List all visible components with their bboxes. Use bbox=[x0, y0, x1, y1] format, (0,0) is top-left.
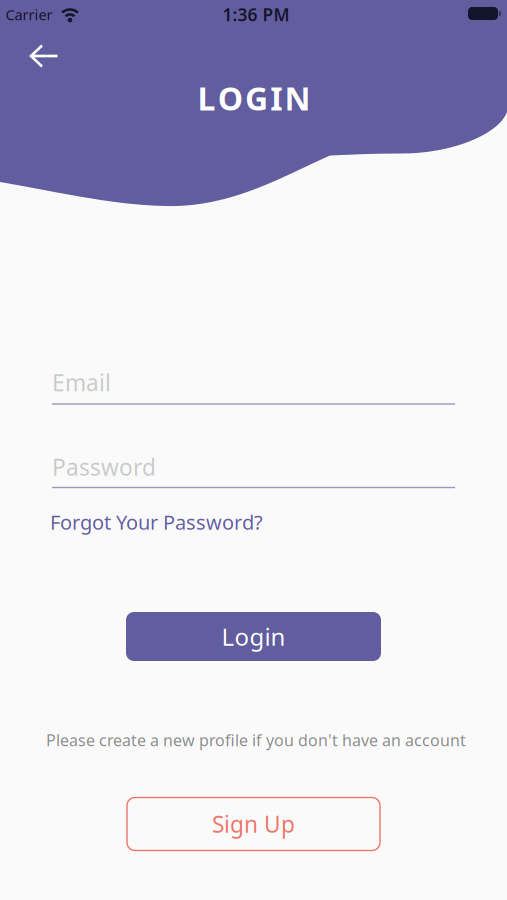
staticText: G bbox=[245, 77, 268, 119]
staticText: Sign Up bbox=[212, 809, 295, 839]
button[interactable]: Forgot Your Password? bbox=[50, 509, 263, 535]
staticText: Email bbox=[52, 367, 111, 397]
staticText: L bbox=[197, 77, 215, 119]
staticText: Carrier bbox=[5, 5, 52, 24]
button[interactable]: Back bbox=[22, 34, 66, 78]
staticText: Please create a new profile if you don't… bbox=[46, 729, 466, 751]
staticText: 1:36 PM bbox=[222, 3, 289, 26]
button[interactable]: Login bbox=[126, 612, 381, 661]
staticText: Password bbox=[52, 452, 156, 482]
staticText: O bbox=[218, 77, 243, 119]
staticText: Login bbox=[221, 621, 285, 652]
staticText: N bbox=[285, 77, 311, 119]
staticText: Forgot Your Password? bbox=[50, 509, 263, 535]
staticText: I bbox=[270, 77, 282, 119]
button[interactable]: Sign Up bbox=[127, 797, 380, 850]
